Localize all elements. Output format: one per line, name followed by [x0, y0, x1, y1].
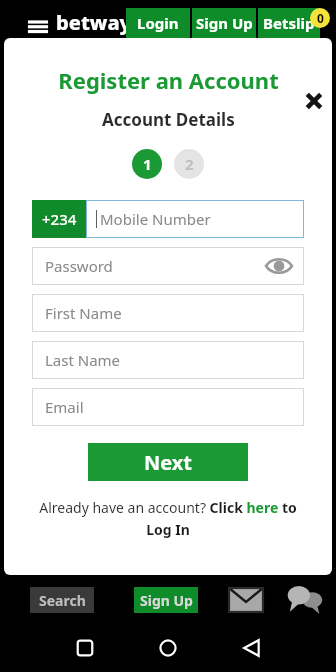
- button[interactable]: Home: [154, 634, 182, 662]
- button[interactable]: Show password: [266, 253, 292, 279]
- button[interactable]: Sign Up: [192, 8, 256, 38]
- button[interactable]: Betslip: [258, 8, 320, 38]
- staticText: Next: [144, 449, 193, 476]
- staticText: Password: [45, 256, 113, 276]
- button[interactable]: First Name: [32, 294, 304, 332]
- staticText: Sign Up: [196, 13, 253, 33]
- staticText: Search: [39, 591, 86, 610]
- staticText: Mobile Number: [100, 209, 211, 229]
- staticText: 2: [185, 154, 194, 174]
- button[interactable]: Menu: [24, 12, 52, 40]
- staticText: Account Details: [102, 108, 235, 131]
- button[interactable]: Mobile Number: [86, 200, 304, 238]
- button[interactable]: Password: [32, 247, 304, 285]
- staticText: Login: [137, 13, 179, 33]
- staticText: Betslip: [263, 13, 315, 33]
- button[interactable]: Chat: [284, 579, 326, 621]
- staticText: Last Name: [45, 350, 121, 370]
- staticText: Email: [45, 397, 84, 417]
- button[interactable]: Sign Up: [134, 587, 198, 613]
- button[interactable]: Last Name: [32, 341, 304, 379]
- button[interactable]: +234: [32, 200, 86, 238]
- staticText: 1: [143, 154, 152, 174]
- staticText: Sign Up: [140, 591, 193, 610]
- button[interactable]: Messages: [226, 580, 266, 620]
- staticText: Register an Account: [58, 65, 279, 95]
- staticText: +234: [42, 209, 77, 229]
- staticText: 0: [317, 10, 324, 26]
- staticText: First Name: [45, 303, 122, 323]
- button[interactable]: Already have an account? Click here to L…: [26, 498, 310, 539]
- button[interactable]: Back: [238, 634, 266, 662]
- button[interactable]: Email: [32, 388, 304, 426]
- button[interactable]: Recents: [71, 634, 99, 662]
- staticText: betway: [56, 9, 132, 36]
- staticText: Already have an account? Click here to L…: [26, 498, 310, 539]
- button[interactable]: Login: [126, 8, 190, 38]
- button[interactable]: 1: [132, 149, 162, 179]
- button[interactable]: 2: [174, 149, 204, 179]
- button[interactable]: Next: [88, 443, 248, 481]
- button[interactable]: Search: [30, 587, 94, 613]
- button[interactable]: Close: [300, 87, 328, 115]
